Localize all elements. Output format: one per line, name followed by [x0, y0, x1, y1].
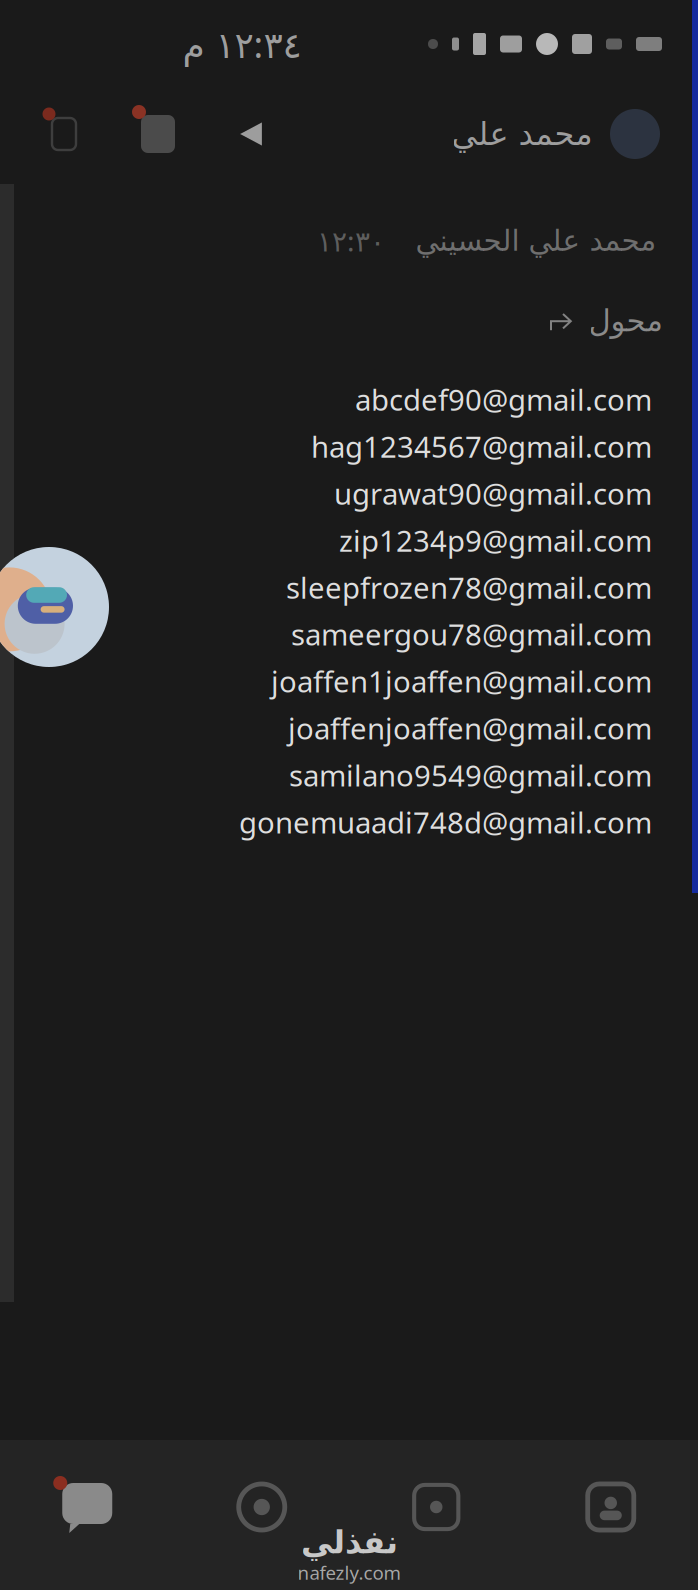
staticText: ١٢:٣٠ — [317, 222, 385, 259]
staticText: samilano9549@gmail.com — [289, 756, 652, 795]
staticText: محمد علي الحسيني — [415, 224, 656, 257]
button[interactable]: Chats — [0, 1440, 174, 1590]
staticText: محمد علي — [451, 116, 592, 152]
staticText: gonemuaadi748d@gmail.com — [239, 803, 652, 842]
button[interactable]: abcdef90@gmail.com — [223, 368, 668, 853]
staticText: محول — [588, 303, 662, 338]
button[interactable]: محمد علي — [451, 109, 660, 159]
button[interactable]: Communities — [349, 1440, 523, 1590]
staticText: ١٢:٣٤ م — [182, 20, 301, 68]
button[interactable]: Settings — [523, 1440, 698, 1590]
button[interactable]: Back — [206, 99, 296, 169]
staticText: abcdef90@gmail.com — [355, 380, 652, 419]
staticText: nafezly.com — [297, 1560, 400, 1585]
staticText: joaffen1joaffen@gmail.com — [271, 662, 652, 701]
staticText: sameergou78@gmail.com — [291, 615, 652, 654]
staticText: joaffenjoaffen@gmail.com — [288, 709, 652, 748]
button[interactable]: Unread — [110, 99, 206, 169]
button[interactable]: Archived — [18, 99, 110, 169]
staticText: hag1234567@gmail.com — [311, 427, 652, 466]
staticText: zip1234p9@gmail.com — [339, 521, 652, 560]
button[interactable]: Updates — [174, 1440, 349, 1590]
staticText: sleepfrozen78@gmail.com — [286, 568, 652, 607]
staticText: ugrawat90@gmail.com — [334, 474, 652, 513]
staticText: نفذلي — [300, 1524, 397, 1560]
